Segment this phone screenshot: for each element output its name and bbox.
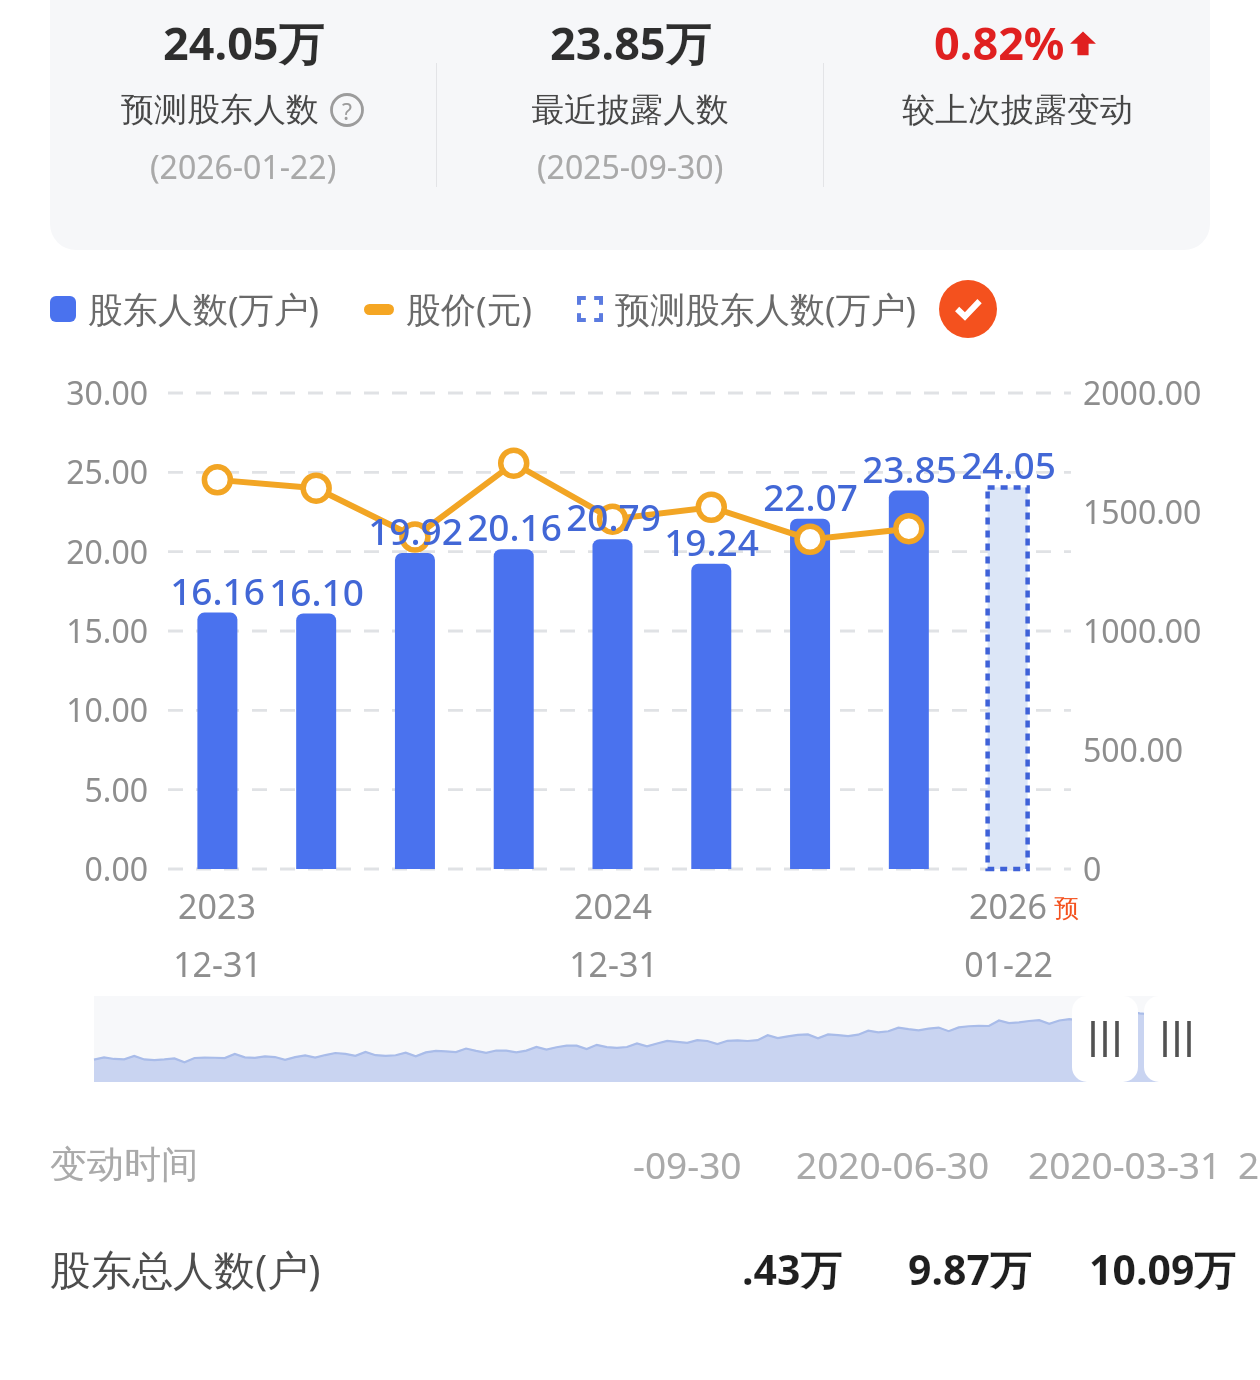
staticText: 500.00 (1083, 728, 1184, 772)
staticText: 2000.00 (1083, 371, 1202, 415)
staticText: 股东总人数(户) (50, 1241, 321, 1297)
staticText: 2024 (574, 883, 652, 929)
staticText: 10.09万 (1089, 1241, 1236, 1297)
staticText: 20.00 (66, 530, 148, 574)
staticText: 19.92 (368, 505, 463, 555)
button[interactable]: 股东总人数(户) (0, 1230, 1260, 1308)
staticText: -09-30 (633, 1139, 742, 1189)
staticText: (2025-09-30) (537, 145, 724, 189)
staticText: 19.24 (664, 516, 759, 566)
button[interactable]: 时间范围选择 (94, 996, 1190, 1082)
staticText: 2 (1238, 1139, 1260, 1189)
staticText: 10.00 (66, 688, 148, 732)
staticText: 25.00 (66, 450, 148, 494)
button[interactable]: 股价(元) (364, 285, 533, 333)
staticText: 30.00 (66, 371, 148, 415)
staticText: 16.10 (269, 566, 364, 616)
staticText: 预测股东人数 (121, 89, 319, 131)
staticText: 预 (1054, 893, 1079, 924)
button[interactable]: 拖动手柄 (1072, 996, 1138, 1082)
staticText: 15.00 (66, 609, 148, 653)
button[interactable]: 帮助说明 (329, 92, 365, 128)
staticText: 20.16 (467, 501, 562, 551)
staticText: 23.85万 (550, 12, 711, 73)
staticText: (2026-01-22) (150, 145, 337, 189)
button[interactable]: 23.85万 (437, 0, 823, 189)
staticText: 较上次披露变动 (902, 89, 1133, 131)
staticText: 16.16 (170, 565, 265, 615)
button[interactable]: 确认选择 (939, 280, 997, 338)
staticText: 1500.00 (1083, 490, 1202, 534)
button[interactable]: 变动时间 (0, 1128, 1260, 1200)
button[interactable]: 拖动手柄 (1144, 996, 1210, 1082)
staticText: 24.05万 (163, 12, 324, 73)
staticText: 2020-03-31 (1028, 1139, 1222, 1189)
staticText: 2023 (178, 883, 256, 929)
staticText: 最近披露人数 (531, 89, 729, 131)
button[interactable]: 0.82% (824, 0, 1210, 131)
staticText: 01-22 (964, 941, 1053, 987)
staticText: 24.05 (961, 439, 1056, 489)
staticText: 0 (1083, 847, 1102, 891)
staticText: 股价(元) (406, 285, 533, 333)
staticText: .43万 (742, 1241, 842, 1297)
staticText: 9.87万 (908, 1241, 1031, 1297)
staticText: 20.79 (566, 491, 661, 541)
staticText: 股东人数(万户) (88, 285, 320, 333)
staticText: 预测股东人数(万户) (615, 285, 917, 333)
staticText: 12-31 (569, 941, 658, 987)
button[interactable]: 股东人数(万户) (50, 285, 320, 333)
staticText: 2026 (969, 883, 1047, 929)
staticText: 22.07 (763, 471, 858, 521)
staticText: 2020-06-30 (796, 1139, 990, 1189)
staticText: ? (342, 95, 352, 126)
staticText: 变动时间 (50, 1141, 198, 1188)
button[interactable]: 24.05万 (50, 0, 436, 189)
button[interactable]: 预测股东人数(万户) (577, 285, 917, 333)
staticText: 0.82% (934, 12, 1065, 73)
staticText: 0.00 (84, 847, 148, 891)
staticText: 5.00 (84, 768, 148, 812)
staticText: 12-31 (173, 941, 262, 987)
staticText: 23.85 (862, 443, 957, 493)
staticText: 1000.00 (1083, 609, 1202, 653)
